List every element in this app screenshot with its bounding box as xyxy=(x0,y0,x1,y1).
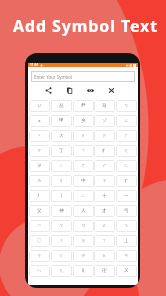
staticText: 卍 xyxy=(102,268,107,274)
staticText: 丩 xyxy=(81,268,86,274)
button[interactable]: ㄑ xyxy=(51,160,72,172)
staticText: ㄛ xyxy=(59,253,64,259)
button[interactable]: ㄒ xyxy=(94,235,115,247)
staticText: 11:34 xyxy=(30,63,39,67)
button[interactable]: ㄡ xyxy=(94,175,115,187)
staticText: ㄆ xyxy=(59,223,64,229)
button[interactable]: ㄚ xyxy=(73,145,94,157)
button[interactable]: 丁 xyxy=(51,145,72,157)
button[interactable]: 父 xyxy=(29,205,50,217)
button[interactable]: ス xyxy=(51,130,72,142)
staticText: ㄜ xyxy=(81,163,86,169)
staticText: ㄞ xyxy=(81,253,86,259)
button[interactable]: 尹 xyxy=(73,100,94,112)
staticText: 甲 xyxy=(59,118,64,124)
button[interactable]: ㄋ xyxy=(116,220,137,232)
staticText: 〇 xyxy=(37,238,42,244)
staticText: ㄤ xyxy=(124,148,129,154)
button[interactable]: ㄏ xyxy=(116,130,137,142)
button[interactable]: 乡 xyxy=(73,115,94,127)
staticText: ㄋ xyxy=(124,223,129,229)
staticText: 丨 xyxy=(59,193,64,199)
button[interactable]: ㄆ xyxy=(51,220,72,232)
button[interactable]: 丄 xyxy=(116,235,137,247)
button[interactable]: ㄔ xyxy=(51,235,72,247)
button[interactable]: ㄈ xyxy=(116,160,137,172)
staticText: ㄅ xyxy=(124,103,129,109)
staticText: 丄 xyxy=(124,238,129,244)
button[interactable]: 卍 xyxy=(94,265,115,277)
staticText: ㄘ xyxy=(37,148,42,154)
button[interactable]: Clear xyxy=(106,85,117,96)
button[interactable]: 丿 xyxy=(29,190,50,202)
staticText: ㄐ xyxy=(81,133,86,139)
button[interactable]: ㄦ xyxy=(51,265,72,277)
button[interactable]: × xyxy=(29,115,50,127)
button[interactable]: ㄜ xyxy=(73,160,94,172)
button[interactable]: 丨 xyxy=(51,190,72,202)
button[interactable]: ㄤ xyxy=(116,145,137,157)
staticText: Г xyxy=(125,178,128,184)
button[interactable]: 人 xyxy=(73,205,94,217)
button[interactable]: ㄐ xyxy=(73,130,94,142)
button[interactable]: 甲 xyxy=(51,115,72,127)
staticText: 神 xyxy=(59,208,64,214)
button[interactable]: 中 xyxy=(73,175,94,187)
staticText: ㄖ xyxy=(59,178,64,184)
button[interactable]: 才 xyxy=(94,205,115,217)
button[interactable]: Share xyxy=(43,85,54,96)
button[interactable]: 丛 xyxy=(51,100,72,112)
button[interactable]: 〇 xyxy=(29,235,50,247)
button[interactable]: ㄣ xyxy=(29,265,50,277)
staticText: ㄚ xyxy=(81,148,86,154)
button[interactable]: ㄗ xyxy=(94,130,115,142)
staticText: ㄎ xyxy=(37,253,42,259)
button[interactable]: 丩 xyxy=(73,265,94,277)
staticText: ㄥ xyxy=(81,193,86,199)
button[interactable]: Preview xyxy=(85,85,96,96)
button[interactable]: ゾ xyxy=(94,115,115,127)
staticText: ㄊ xyxy=(102,223,107,229)
staticText: ㄣ xyxy=(37,268,42,274)
button[interactable]: ㄘ xyxy=(29,145,50,157)
staticText: 乡 xyxy=(81,118,86,124)
button[interactable]: ㄛ xyxy=(51,250,72,262)
staticText: ㄕ xyxy=(102,163,107,169)
button[interactable]: 神 xyxy=(51,205,72,217)
button[interactable]: ㄠ xyxy=(94,250,115,262)
button[interactable]: ㄕ xyxy=(94,160,115,172)
staticText: ㄓ xyxy=(81,238,86,244)
button[interactable]: Copy xyxy=(64,85,75,96)
button[interactable]: ジ xyxy=(29,100,50,112)
button[interactable]: ㄞ xyxy=(73,250,94,262)
button[interactable]: ヲ xyxy=(29,160,50,172)
button[interactable]: 弓 xyxy=(116,205,137,217)
button[interactable]: ㄎ xyxy=(29,250,50,262)
button[interactable]: 丶 xyxy=(29,130,50,142)
staticText: ㄈ xyxy=(124,163,129,169)
staticText: ㄢ xyxy=(124,253,129,259)
staticText: 丶 xyxy=(37,133,42,139)
button[interactable]: Enter Your Symbol xyxy=(31,71,135,82)
staticText: 尹 xyxy=(81,103,86,109)
button[interactable]: ㄅ xyxy=(116,100,137,112)
button[interactable]: ㄢ xyxy=(116,250,137,262)
button[interactable]: 一 xyxy=(116,190,137,202)
button[interactable]: ㄌ xyxy=(29,175,50,187)
button[interactable]: 马 xyxy=(94,100,115,112)
button[interactable]: ㄓ xyxy=(73,235,94,247)
button[interactable]: ㄉ xyxy=(73,220,94,232)
staticText: ㄔ xyxy=(59,238,64,244)
staticText: ㄙ xyxy=(124,118,129,124)
button[interactable]: ㄙ xyxy=(116,115,137,127)
staticText: ヲ xyxy=(37,163,42,169)
button[interactable]: 乂 xyxy=(116,265,137,277)
button[interactable]: Г xyxy=(116,175,137,187)
button[interactable]: ㄊ xyxy=(94,220,115,232)
button[interactable]: ㄥ xyxy=(73,190,94,202)
button[interactable]: ㄖ xyxy=(51,175,72,187)
button[interactable]: 十 xyxy=(94,190,115,202)
button[interactable]: 彳 xyxy=(94,145,115,157)
staticText: 人 xyxy=(81,208,86,214)
button[interactable]: ㄇ xyxy=(29,220,50,232)
